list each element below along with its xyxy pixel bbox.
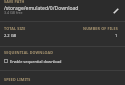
- button[interactable]: Enable sequential download: [0, 57, 125, 65]
- button[interactable]: Edit save path: [110, 5, 121, 16]
- staticText: SEQUENTIAL DOWNLOAD: [4, 50, 54, 55]
- staticText: 1: [115, 33, 118, 38]
- staticText: 3.4 GB free: [4, 10, 23, 15]
- staticText: NUMBER OF FILES: [83, 26, 118, 31]
- staticText: /storage/emulated/0/Download: [4, 5, 79, 12]
- staticText: TOTAL SIZE: [4, 26, 26, 31]
- staticText: Enable sequential download: [10, 59, 62, 64]
- staticText: SAVE PATH: [4, 0, 25, 4]
- staticText: SPEED LIMITS: [4, 77, 31, 82]
- staticText: 2.2 GB: [4, 33, 17, 38]
